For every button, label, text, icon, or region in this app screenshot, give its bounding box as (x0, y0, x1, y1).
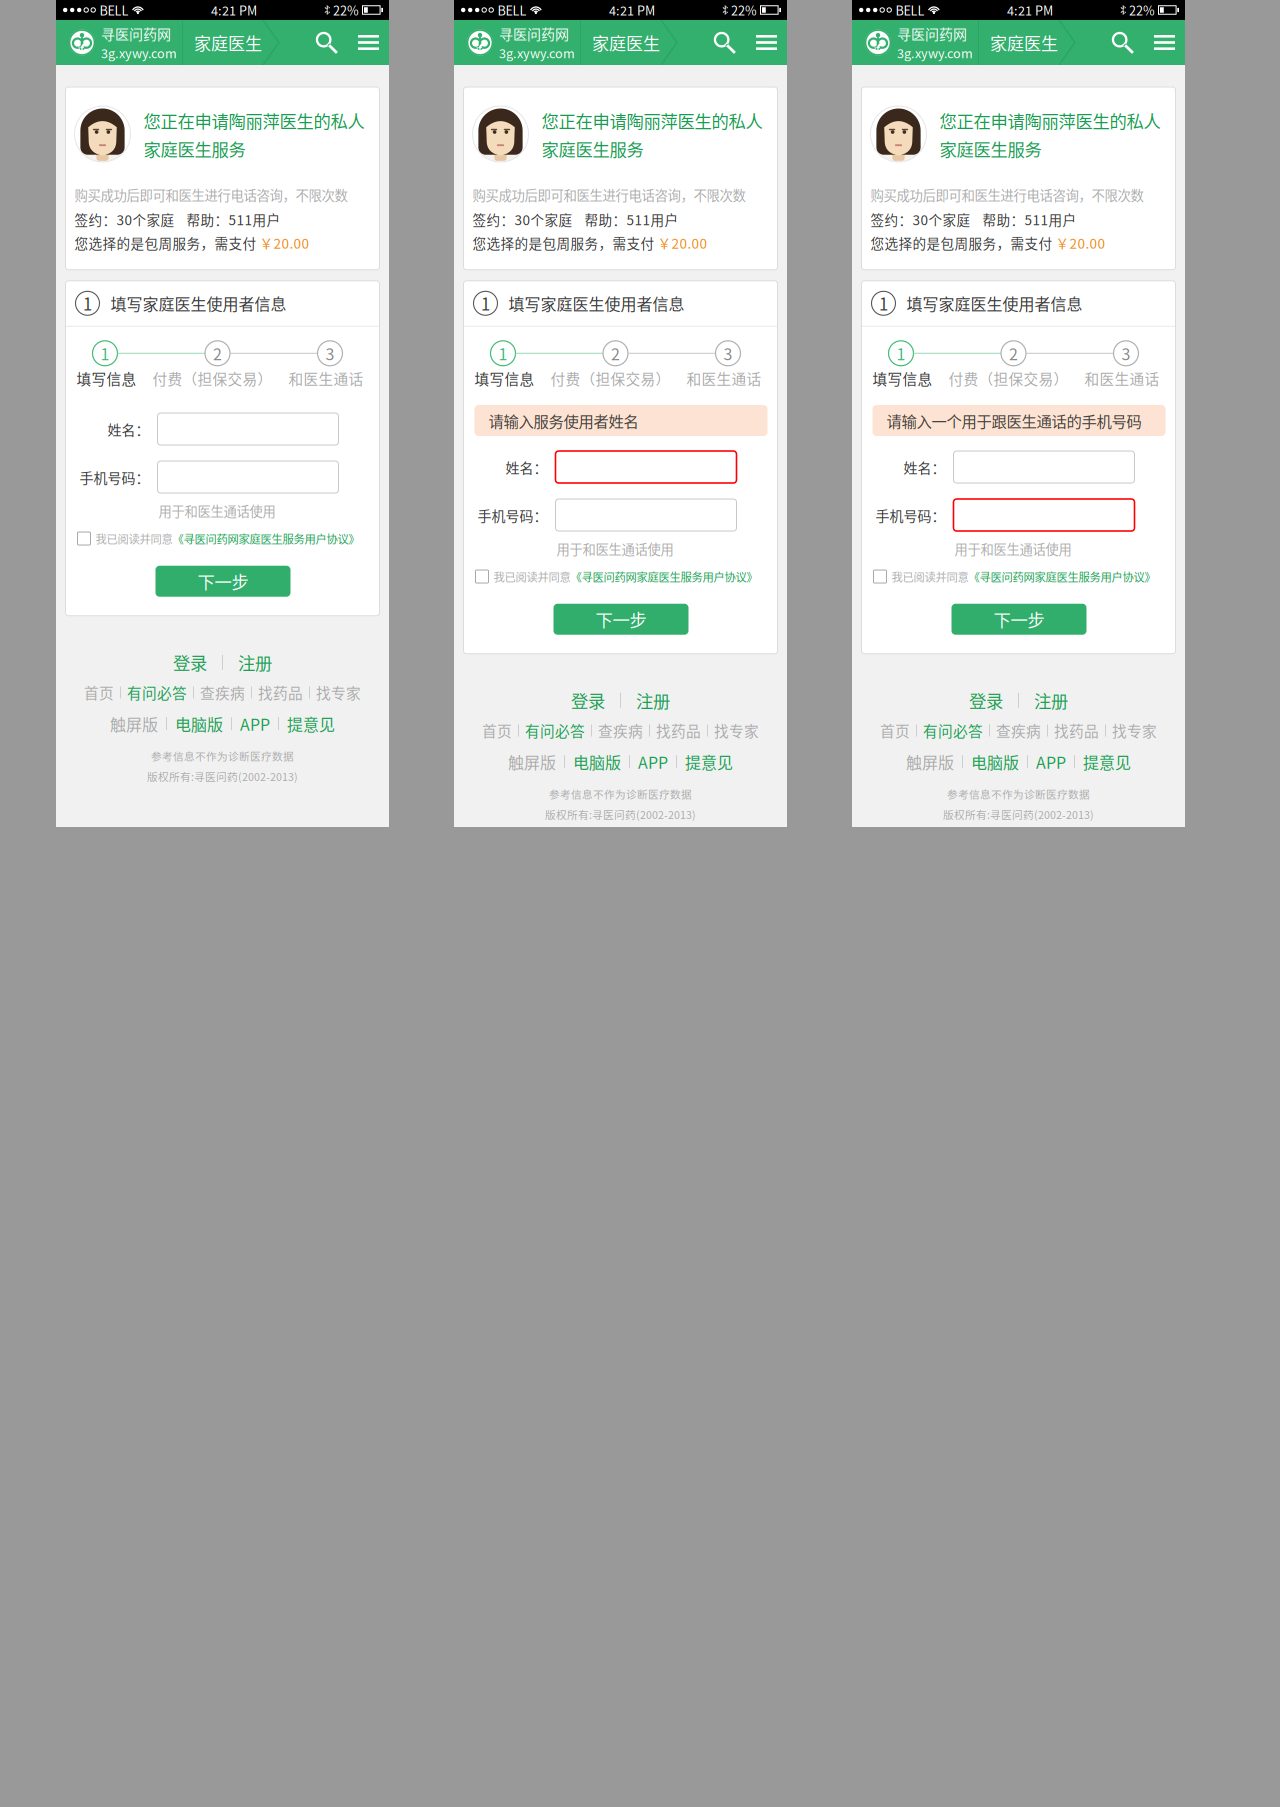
staticText: 付费（担保交易） (550, 368, 670, 389)
staticText: 和医生通话 (686, 368, 761, 389)
staticText: 注册 (238, 650, 272, 675)
staticText: APP (1036, 750, 1066, 773)
button[interactable]: 搜索 (1101, 20, 1144, 65)
button[interactable]: 寻医问药网 3g.xywy.com (852, 20, 978, 65)
button[interactable]: 提意见 (287, 712, 335, 735)
button[interactable]: 首页 (880, 720, 910, 741)
staticText: 您选择的是包周服务，需支付 (74, 233, 259, 253)
button[interactable]: 找专家 (1112, 720, 1157, 741)
staticText: 姓名： (107, 419, 149, 439)
staticText: 我已阅读并同意 (95, 530, 172, 547)
staticText: 版权所有:寻医问药(2002-2013) (943, 807, 1094, 822)
button[interactable]: 提意见 (1083, 750, 1131, 773)
staticText: 登录 (571, 688, 605, 713)
button[interactable]: 查疾病 (996, 720, 1041, 741)
staticText: 3g.xywy.com (499, 43, 575, 62)
staticText: 4:21 PM (1007, 1, 1053, 19)
staticText: ￥20.00 (259, 233, 309, 253)
button[interactable]: 下一步 (155, 566, 290, 597)
staticText: 付费（担保交易） (152, 368, 272, 389)
staticText: 1 (896, 342, 905, 365)
button[interactable]: 家庭医生 (581, 20, 660, 65)
button[interactable]: 登录 (571, 688, 605, 713)
staticText: ￥20.00 (1055, 233, 1105, 253)
staticText: 版权所有:寻医问药(2002-2013) (545, 807, 696, 822)
button[interactable]: APP (638, 750, 668, 773)
staticText: 填写信息 (474, 368, 534, 389)
button[interactable]: 我已阅读并同意 (474, 558, 757, 585)
button[interactable]: 首页 (482, 720, 512, 741)
staticText: 参考信息不作为诊断医疗数据 (947, 786, 1090, 802)
staticText: 寻医问药网 (101, 23, 171, 43)
button[interactable]: 下一步 (553, 604, 688, 635)
button[interactable]: 找专家 (714, 720, 759, 741)
button[interactable]: 查疾病 (598, 720, 643, 741)
button[interactable]: 找药品 (1054, 720, 1099, 741)
button[interactable]: 查疾病 (200, 682, 245, 703)
button[interactable]: 家庭医生 (183, 20, 262, 65)
button[interactable]: 找专家 (316, 682, 361, 703)
button[interactable]: 有问必答 (923, 720, 983, 741)
staticText: 2 (1009, 342, 1018, 365)
button[interactable]: 找药品 (258, 682, 303, 703)
staticText: 填写信息 (872, 368, 932, 389)
button[interactable]: 触屏版 (508, 750, 556, 773)
staticText: 登录 (173, 650, 207, 675)
button[interactable]: 菜单 (1144, 20, 1185, 65)
staticText: 首页 (84, 682, 114, 703)
staticText: 22% (731, 1, 757, 19)
button[interactable]: APP (240, 712, 270, 735)
staticText: 《寻医问药网家庭医生服务用户协议》 (570, 568, 757, 585)
button[interactable]: 电脑版 (573, 750, 621, 773)
button[interactable]: 菜单 (348, 20, 389, 65)
staticText: 提意见 (685, 750, 733, 773)
staticText: 提意见 (1083, 750, 1131, 773)
button[interactable]: 搜索 (703, 20, 746, 65)
button[interactable]: 有问必答 (525, 720, 585, 741)
button[interactable]: APP (1036, 750, 1066, 773)
staticText: 找药品 (258, 682, 303, 703)
button[interactable]: 首页 (84, 682, 114, 703)
staticText: 下一步 (595, 607, 646, 632)
staticText: 《寻医问药网家庭医生服务用户协议》 (968, 568, 1155, 585)
button[interactable]: 电脑版 (971, 750, 1019, 773)
button[interactable]: 我已阅读并同意 (872, 558, 1155, 585)
staticText: 家庭医生服务 (541, 136, 643, 161)
staticText: 家庭医生 (990, 30, 1058, 55)
staticText: 参考信息不作为诊断医疗数据 (151, 748, 294, 764)
button[interactable]: 登录 (969, 688, 1003, 713)
button[interactable]: 电脑版 (175, 712, 223, 735)
button[interactable]: 下一步 (951, 604, 1086, 635)
button[interactable]: 有问必答 (127, 682, 187, 703)
staticText: ￥20.00 (657, 233, 707, 253)
button[interactable]: 注册 (1034, 688, 1068, 713)
button[interactable]: 注册 (636, 688, 670, 713)
staticText: 1 (100, 342, 109, 365)
button[interactable]: 搜索 (305, 20, 348, 65)
staticText: 手机号码： (79, 467, 149, 487)
staticText: 下一步 (993, 607, 1044, 632)
button[interactable]: 注册 (238, 650, 272, 675)
button[interactable]: 找药品 (656, 720, 701, 741)
staticText: 签约：30个家庭 帮助：511用户 (74, 209, 280, 229)
staticText: 注册 (1034, 688, 1068, 713)
staticText: 找药品 (1054, 720, 1099, 741)
button[interactable]: 寻医问药网 3g.xywy.com (454, 20, 580, 65)
button[interactable]: 提意见 (685, 750, 733, 773)
button[interactable]: 触屏版 (906, 750, 954, 773)
staticText: 查疾病 (200, 682, 245, 703)
button[interactable]: 我已阅读并同意 (76, 520, 359, 547)
staticText: 电脑版 (573, 750, 621, 773)
button[interactable]: 登录 (173, 650, 207, 675)
staticText: 填写信息 (76, 368, 136, 389)
staticText: 用于和医生通话使用 (556, 539, 673, 558)
staticText: 您正在申请陶丽萍医生的私人 (143, 108, 364, 133)
staticText: BELL (99, 1, 128, 19)
button[interactable]: 家庭医生 (979, 20, 1058, 65)
button[interactable]: 寻医问药网 3g.xywy.com (56, 20, 182, 65)
staticText: APP (240, 712, 270, 735)
staticText: 1 (83, 291, 92, 315)
staticText: 用于和医生通话使用 (954, 539, 1071, 558)
button[interactable]: 触屏版 (110, 712, 158, 735)
button[interactable]: 菜单 (746, 20, 787, 65)
